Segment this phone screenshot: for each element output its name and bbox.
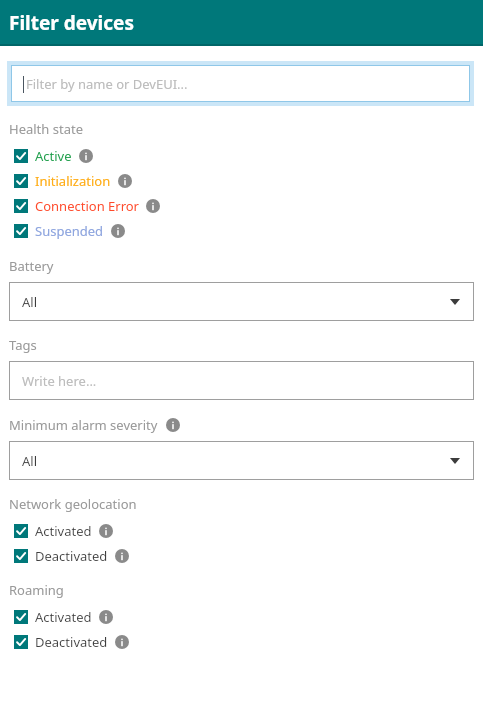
- button[interactable]: Info: [111, 224, 125, 238]
- button[interactable]: Info: [99, 610, 113, 624]
- button[interactable]: Info: [99, 524, 113, 538]
- staticText: Network geolocation: [9, 495, 137, 513]
- button[interactable]: Initialization: [0, 169, 483, 193]
- staticText: Tags: [9, 336, 37, 354]
- staticText: Health state: [9, 120, 83, 138]
- button[interactable]: Deactivated: [0, 630, 483, 654]
- staticText: Write here...: [22, 372, 97, 390]
- staticText: Filter devices: [9, 10, 134, 36]
- staticText: All: [22, 293, 38, 311]
- button[interactable]: Info: [115, 549, 129, 563]
- staticText: Battery: [9, 257, 54, 275]
- button[interactable]: Suspended: [0, 219, 483, 243]
- button[interactable]: Deactivated: [0, 544, 483, 568]
- staticText: Initialization: [35, 172, 111, 190]
- staticText: Filter by name or DevEUI...: [26, 75, 188, 93]
- button[interactable]: Filter by name or DevEUI...: [11, 65, 470, 102]
- button[interactable]: All: [9, 282, 474, 321]
- button[interactable]: Info: [146, 199, 160, 213]
- button[interactable]: Info: [115, 635, 129, 649]
- button[interactable]: Active: [0, 144, 483, 168]
- staticText: Minimum alarm severity: [9, 416, 158, 434]
- staticText: Deactivated: [35, 633, 108, 651]
- button[interactable]: Info: [118, 174, 132, 188]
- staticText: Suspended: [35, 222, 104, 240]
- button[interactable]: All: [9, 441, 474, 480]
- button[interactable]: Write here...: [9, 361, 474, 400]
- button[interactable]: Connection Error: [0, 194, 483, 218]
- staticText: Activated: [35, 608, 92, 626]
- staticText: Deactivated: [35, 547, 108, 565]
- button[interactable]: Info: [79, 149, 93, 163]
- staticText: Connection Error: [35, 197, 139, 215]
- button[interactable]: Info: [166, 418, 180, 432]
- staticText: Roaming: [9, 581, 64, 599]
- staticText: All: [22, 452, 38, 470]
- staticText: Activated: [35, 522, 92, 540]
- button[interactable]: Activated: [0, 519, 483, 543]
- staticText: Active: [35, 147, 72, 165]
- button[interactable]: Activated: [0, 605, 483, 629]
